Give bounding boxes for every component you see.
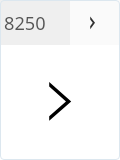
button[interactable]: 8250	[0, 0, 70, 45]
other: Forward	[0, 0, 120, 160]
button[interactable]: Next	[70, 0, 120, 45]
staticText: 8250	[4, 11, 46, 36]
